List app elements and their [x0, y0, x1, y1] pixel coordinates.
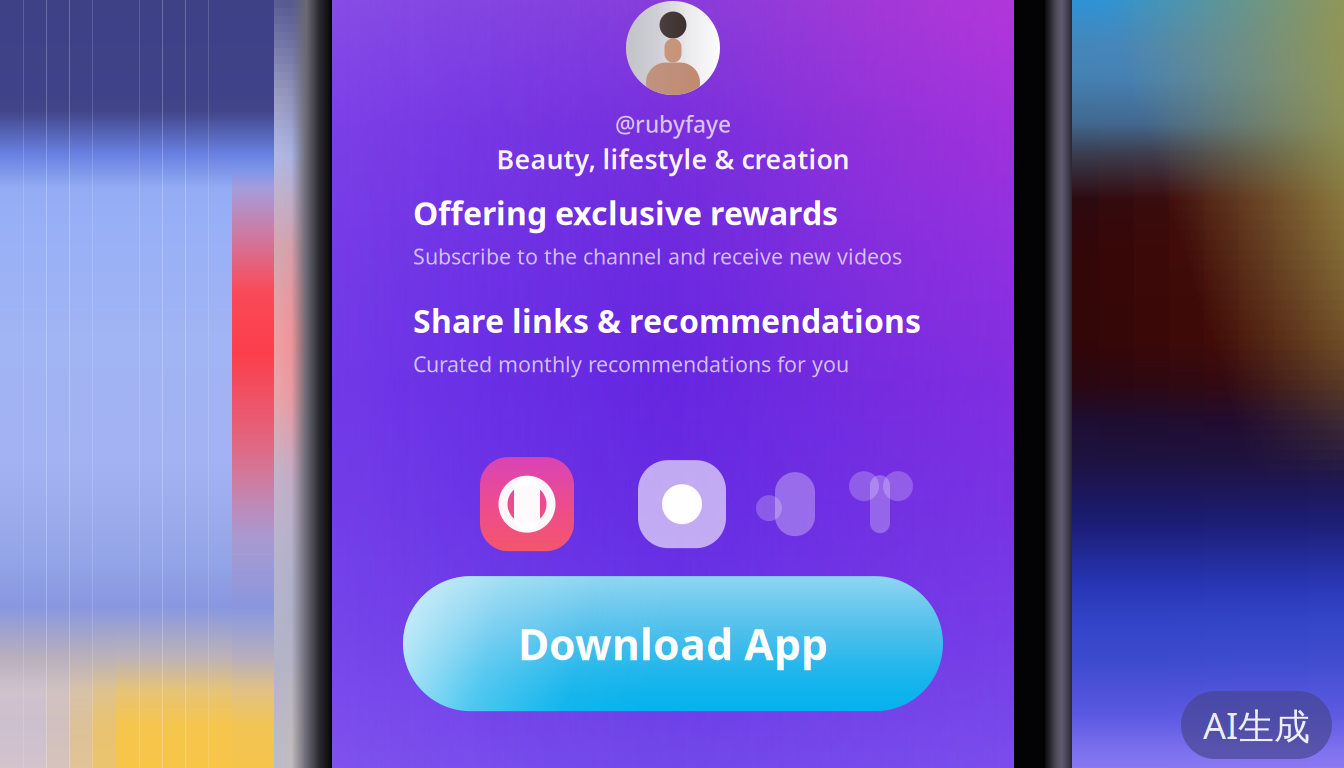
button[interactable]: Messages: [638, 460, 726, 548]
staticText: AI生成: [1203, 701, 1310, 749]
staticText: Curated monthly recommendations for you: [413, 350, 849, 378]
staticText: Share links & recommendations: [413, 299, 921, 342]
button[interactable]: Instagram: [480, 457, 574, 551]
button[interactable]: TikTok: [752, 460, 838, 548]
staticText: Offering exclusive rewards: [413, 191, 838, 234]
staticText: Beauty, lifestyle & creation: [496, 141, 849, 176]
staticText: Subscribe to the channel and receive new…: [413, 242, 902, 270]
staticText: Download App: [518, 615, 828, 672]
button[interactable]: YouTube: [844, 460, 916, 548]
staticText: @rubyfaye: [615, 109, 731, 139]
button[interactable]: Download App: [403, 576, 943, 711]
